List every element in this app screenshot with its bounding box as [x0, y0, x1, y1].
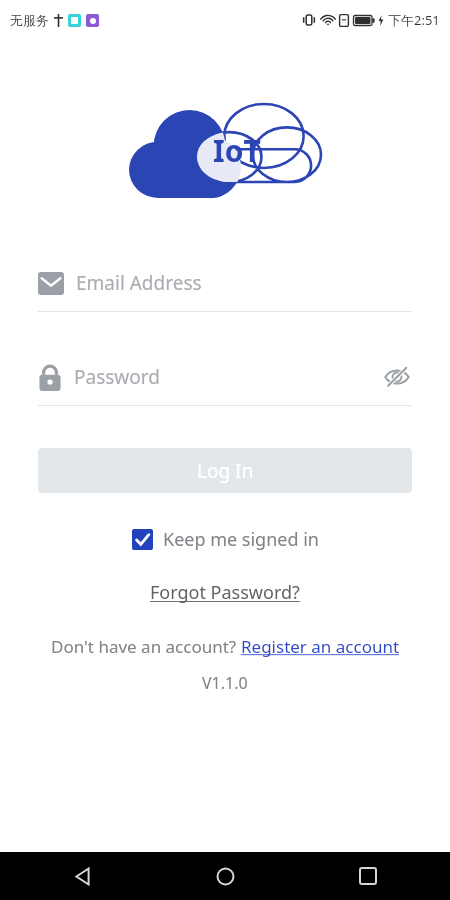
button[interactable]: Register an account	[241, 635, 400, 658]
button[interactable]: Password	[38, 360, 412, 406]
staticText: Log In	[197, 458, 254, 484]
button[interactable]: Show password	[382, 362, 412, 392]
button[interactable]: Keep me signed in	[126, 523, 325, 556]
staticText: 无服务	[10, 12, 49, 28]
button[interactable]: Forgot Password?	[142, 576, 308, 609]
staticText: V1.1.0	[202, 672, 248, 694]
staticText: 下午2:51	[388, 11, 440, 29]
other: IoT logo	[125, 104, 325, 204]
staticText: Don't have an account?	[51, 635, 241, 658]
button[interactable]: Log In	[38, 448, 412, 493]
button[interactable]: Home	[203, 854, 247, 898]
button[interactable]: Email Address	[38, 266, 412, 312]
staticText: IoT	[213, 130, 261, 171]
staticText: Forgot Password?	[150, 580, 300, 605]
staticText: Keep me signed in	[163, 527, 319, 552]
staticText: Register an account	[241, 635, 400, 658]
staticText: Email Address	[76, 270, 202, 296]
button[interactable]: Recent apps	[346, 854, 390, 898]
staticText: Password	[74, 364, 160, 390]
button[interactable]: Back	[60, 854, 104, 898]
